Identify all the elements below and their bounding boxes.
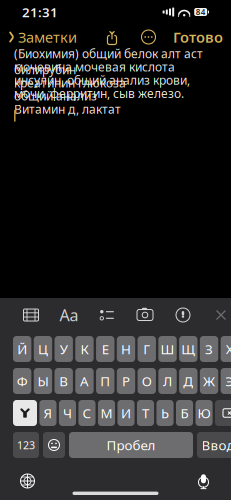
staticText: мочевина мочевая кислота креатинин глюко… bbox=[14, 59, 175, 91]
button[interactable]: Emoji bbox=[43, 432, 65, 458]
staticText: Т bbox=[142, 404, 149, 422]
button[interactable]: Г bbox=[138, 336, 156, 362]
button[interactable]: Insert table bbox=[16, 303, 46, 327]
button[interactable]: Ь bbox=[156, 400, 174, 426]
button[interactable]: Ввод bbox=[197, 432, 231, 458]
button[interactable]: Camera bbox=[130, 303, 160, 327]
button[interactable]: В bbox=[54, 368, 73, 394]
button[interactable]: Hide keyboard bbox=[206, 303, 231, 327]
staticText: Ц bbox=[38, 340, 48, 358]
staticText: Ш bbox=[160, 340, 174, 358]
button[interactable]: Пробел bbox=[69, 432, 193, 458]
staticText: Д bbox=[183, 372, 193, 390]
button[interactable]: Next keyboard bbox=[14, 467, 41, 494]
button[interactable]: Заметки bbox=[8, 23, 83, 51]
button[interactable]: С bbox=[78, 400, 95, 426]
staticText: В bbox=[59, 372, 68, 390]
button[interactable]: Format bbox=[54, 303, 84, 327]
staticText: Е bbox=[102, 340, 109, 358]
staticText: Э bbox=[225, 372, 231, 390]
staticText: Ы bbox=[37, 372, 48, 390]
staticText: Н bbox=[121, 340, 131, 358]
button[interactable]: Shift bbox=[13, 400, 37, 426]
staticText: Ь bbox=[161, 404, 169, 422]
button[interactable]: М bbox=[98, 400, 115, 426]
staticText: П bbox=[100, 372, 110, 390]
button[interactable]: К bbox=[75, 336, 94, 362]
staticText: О bbox=[142, 372, 152, 390]
button[interactable]: Р bbox=[117, 368, 135, 394]
staticText: мочи, ферритин, сыв железо. Витамин д, л… bbox=[14, 85, 184, 117]
button[interactable]: Н bbox=[117, 336, 135, 362]
staticText: Ф bbox=[17, 372, 28, 390]
staticText: (Биохимия) общий белок алт аст билирубин bbox=[14, 46, 203, 78]
button[interactable]: Ч bbox=[59, 400, 76, 426]
button[interactable]: Markup bbox=[168, 303, 198, 327]
staticText: инсулин, общий анализ крови, общий анали… bbox=[14, 72, 190, 104]
button[interactable]: Ш bbox=[158, 336, 177, 362]
button[interactable]: Б bbox=[176, 400, 193, 426]
staticText: Ч bbox=[63, 404, 72, 422]
staticText: Готово bbox=[173, 27, 223, 47]
button[interactable]: Э bbox=[221, 368, 231, 394]
button[interactable]: Dictate bbox=[190, 466, 217, 496]
staticText: 123 bbox=[17, 438, 35, 452]
button[interactable]: Checklist bbox=[92, 303, 122, 327]
button[interactable]: О bbox=[138, 368, 156, 394]
staticText: Г bbox=[143, 340, 150, 358]
button[interactable]: Т bbox=[137, 400, 154, 426]
button[interactable]: Л bbox=[158, 368, 177, 394]
button[interactable]: Я bbox=[39, 400, 56, 426]
staticText: Б bbox=[180, 404, 188, 422]
button[interactable]: Щ bbox=[179, 336, 197, 362]
staticText: И bbox=[121, 404, 131, 422]
staticText: С bbox=[82, 404, 91, 422]
button[interactable]: И bbox=[117, 400, 134, 426]
button[interactable]: З bbox=[200, 336, 218, 362]
staticText: 21:31 bbox=[22, 3, 58, 21]
button[interactable]: 123 bbox=[13, 432, 39, 458]
staticText: Р bbox=[122, 372, 130, 390]
button[interactable]: Й bbox=[13, 336, 31, 362]
staticText: Пробел bbox=[106, 436, 155, 454]
staticText: Л bbox=[163, 372, 172, 390]
button[interactable]: Delete bbox=[215, 400, 231, 426]
staticText: К bbox=[80, 340, 88, 358]
button[interactable]: У bbox=[54, 336, 73, 362]
button[interactable]: Ф bbox=[13, 368, 31, 394]
button[interactable]: Е bbox=[96, 336, 114, 362]
staticText: З bbox=[205, 340, 213, 358]
button[interactable]: Ю bbox=[195, 400, 213, 426]
staticText: Aa bbox=[59, 304, 78, 326]
button[interactable]: А bbox=[75, 368, 94, 394]
button[interactable]: More bbox=[137, 27, 160, 46]
staticText: У bbox=[60, 340, 68, 358]
staticText: Я bbox=[43, 404, 52, 422]
staticText: А bbox=[80, 372, 89, 390]
button[interactable]: Share bbox=[101, 27, 123, 47]
button[interactable]: Ц bbox=[34, 336, 52, 362]
button[interactable]: П bbox=[96, 368, 114, 394]
button[interactable]: Ы bbox=[34, 368, 52, 394]
button[interactable]: Х bbox=[221, 336, 231, 362]
staticText: Ввод bbox=[201, 436, 231, 454]
button[interactable]: Д bbox=[179, 368, 197, 394]
staticText: Ю bbox=[197, 404, 210, 422]
staticText: Ж bbox=[203, 372, 215, 390]
button[interactable]: Готово bbox=[173, 23, 223, 51]
staticText: Заметки bbox=[18, 27, 77, 47]
staticText: Щ bbox=[181, 340, 195, 358]
button[interactable]: Ж bbox=[200, 368, 218, 394]
staticText: Й bbox=[17, 340, 27, 358]
staticText: 84 bbox=[196, 7, 206, 17]
staticText: Х bbox=[226, 340, 231, 358]
staticText: М bbox=[100, 404, 112, 422]
